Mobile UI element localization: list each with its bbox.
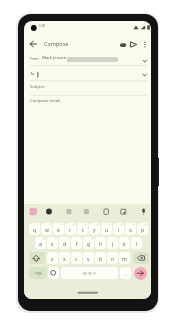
staticText: 2 [49,223,51,226]
button[interactable] [119,207,128,216]
button[interactable]: g [83,237,94,249]
staticText: 3 [61,223,63,226]
button[interactable] [24,52,151,66]
staticText: e [57,227,60,234]
staticText: f [76,241,78,248]
staticText: a [39,241,42,248]
staticText: 6 [97,223,99,226]
button[interactable] [142,39,151,50]
staticText: m [122,256,127,263]
staticText: s [51,241,54,248]
button[interactable]: q [29,223,40,235]
button[interactable]: e [53,223,64,235]
staticText: w [45,227,49,234]
staticText: z [51,256,54,263]
staticText: t [82,227,84,234]
staticText: EN · FR · IT [83,272,96,276]
button[interactable] [65,207,74,216]
staticText: ( [128,237,129,240]
staticText: o [129,227,133,234]
staticText: 5 [85,223,87,226]
staticText: 0 [145,223,147,226]
staticText: & [91,237,93,240]
button[interactable] [134,267,147,280]
staticText: g [87,241,91,248]
button[interactable]: v [83,252,94,264]
staticText: k [123,241,126,248]
button[interactable] [30,207,39,216]
staticText: 7 [109,223,111,226]
button[interactable]: y [89,223,100,235]
staticText: h [99,241,103,248]
staticText: v [87,256,90,263]
button[interactable] [133,252,149,264]
button[interactable]: c [71,252,82,264]
button[interactable]: l [131,237,142,249]
button[interactable] [83,207,92,216]
button[interactable] [29,252,45,264]
staticText: € [67,237,69,240]
button[interactable]: j [107,237,118,249]
staticText: d [63,241,67,248]
staticText: n [111,256,115,263]
staticText: _ [80,237,81,240]
staticText: 4 [73,223,75,226]
button[interactable]: p [137,223,148,235]
staticText: q [33,227,37,234]
staticText: 1 [37,223,39,226]
staticText: ?123 [35,272,42,276]
staticText: Compose [44,40,69,47]
staticText: 8 [121,223,123,226]
staticText: 5:00 [39,24,46,28]
staticText: # [55,237,57,240]
staticText: Compose email [30,98,61,104]
button[interactable] [24,96,151,196]
button[interactable]: x [59,252,70,264]
button[interactable]: h [95,237,106,249]
staticText: r [69,227,72,234]
staticText: p [141,227,145,234]
button[interactable]: k [119,237,130,249]
button[interactable]: z [47,252,58,264]
button[interactable]: w [41,223,52,235]
button[interactable]: o [125,223,136,235]
staticText: c [75,256,78,263]
staticText: + [115,237,117,240]
button[interactable]: EN · FR · IT [61,267,118,279]
button[interactable]: u [101,223,112,235]
button[interactable] [102,207,111,216]
staticText: 9 [133,223,135,226]
button[interactable]: f [71,237,82,249]
staticText: ) [140,237,141,240]
button[interactable]: d [59,237,70,249]
button[interactable]: n [107,252,118,264]
staticText: @ [43,237,45,240]
button[interactable] [24,67,151,81]
button[interactable]: a [35,237,46,249]
button[interactable]: b [95,252,106,264]
button[interactable]: m [119,252,130,264]
staticText: Subject [30,84,45,90]
staticText: Mark Jensen [42,55,67,61]
staticText: y [93,227,96,234]
button[interactable]: t [77,223,88,235]
button[interactable] [117,39,128,50]
button[interactable] [131,39,142,50]
staticText: l [136,241,138,248]
button[interactable] [28,39,39,50]
staticText: b [99,256,103,263]
button[interactable]: ?123 [29,267,47,279]
button[interactable]: s [47,237,58,249]
staticText: . [125,271,127,278]
staticText: x [63,256,66,263]
staticText: - [104,237,105,240]
button[interactable]: r [65,223,76,235]
button[interactable]: i [113,223,124,235]
button[interactable] [48,267,59,279]
staticText: u [105,227,109,234]
staticText: j [112,241,114,248]
button[interactable] [24,82,151,96]
button[interactable]: . [120,267,131,279]
button[interactable] [140,207,149,216]
button[interactable] [45,207,54,216]
